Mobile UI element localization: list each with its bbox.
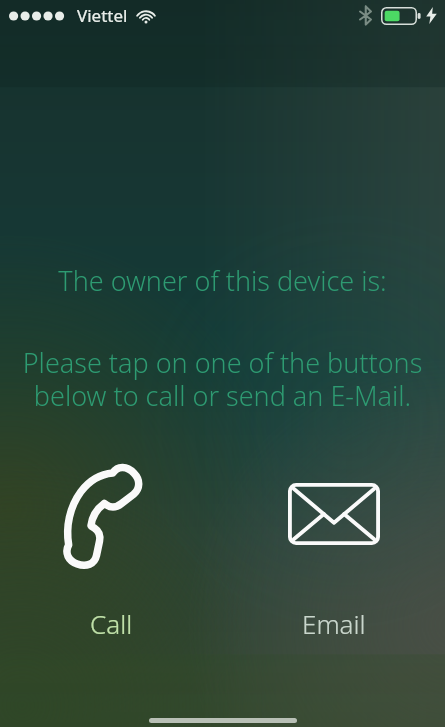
staticText: Viettel — [77, 4, 128, 27]
button[interactable]: Call — [0, 456, 222, 647]
staticText: The owner of this device is: — [0, 262, 445, 299]
other: Call — [59, 462, 163, 566]
staticText: Email — [302, 606, 366, 641]
staticText: Call — [90, 606, 133, 641]
staticText: Please tap on one of the buttons below t… — [22, 344, 423, 414]
other: Email — [282, 462, 386, 566]
button[interactable]: Email — [222, 456, 445, 647]
